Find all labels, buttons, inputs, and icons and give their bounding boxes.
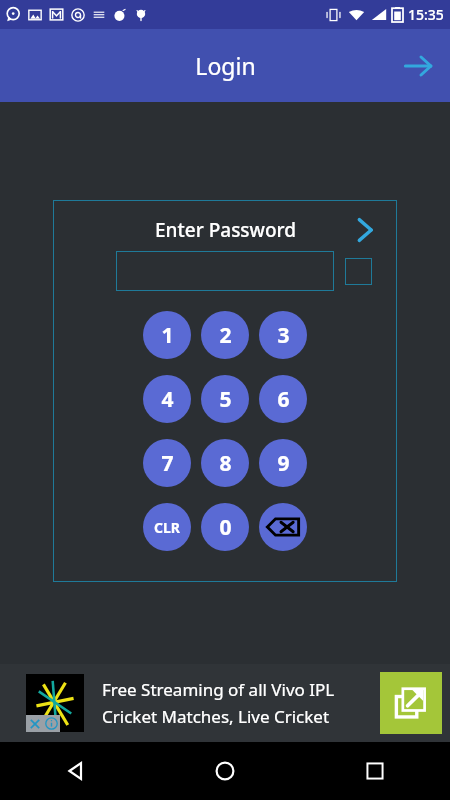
staticText: 3: [277, 321, 290, 350]
staticText: 9: [277, 449, 290, 478]
button[interactable]: 4: [143, 375, 191, 423]
staticText: 8: [219, 449, 232, 478]
button[interactable]: 6: [259, 375, 307, 423]
staticText: 0: [219, 513, 232, 542]
staticText: Free Streaming of all Vivo IPL: [102, 678, 335, 701]
button[interactable]: 2: [201, 311, 249, 359]
button[interactable]: 3: [259, 311, 307, 359]
button[interactable]: 7: [143, 439, 191, 487]
staticText: 2: [219, 321, 232, 350]
button[interactable]: 1: [143, 311, 191, 359]
staticText: Enter Password: [155, 217, 296, 243]
button[interactable]: 5: [201, 375, 249, 423]
staticText: 7: [161, 449, 174, 478]
button[interactable]: Open ad: [380, 672, 442, 734]
button[interactable]: CLR: [143, 503, 191, 551]
button[interactable]: Ad information: [43, 715, 60, 732]
button[interactable]: Show password: [345, 258, 372, 285]
staticText: CLR: [154, 518, 180, 537]
staticText: 1: [161, 321, 174, 350]
staticText: Cricket Matches, Live Cricket: [102, 705, 330, 728]
staticText: Login: [195, 50, 256, 81]
button[interactable]: Recent apps: [300, 742, 450, 800]
button[interactable]: Back: [0, 742, 150, 800]
button[interactable]: 9: [259, 439, 307, 487]
button[interactable]: 0: [201, 503, 249, 551]
button[interactable]: 8: [201, 439, 249, 487]
button[interactable]: Backspace: [259, 503, 307, 551]
button[interactable]: Next: [347, 212, 383, 248]
button[interactable]: Submit: [394, 42, 442, 90]
button[interactable]: [116, 251, 334, 291]
staticText: 5: [219, 385, 232, 414]
staticText: 15:35: [408, 5, 444, 24]
staticText: 4: [161, 385, 174, 414]
staticText: 6: [277, 385, 290, 414]
button[interactable]: Home: [150, 742, 300, 800]
button[interactable]: Close ad: [26, 715, 43, 732]
button[interactable]: Close ad: [0, 664, 450, 742]
